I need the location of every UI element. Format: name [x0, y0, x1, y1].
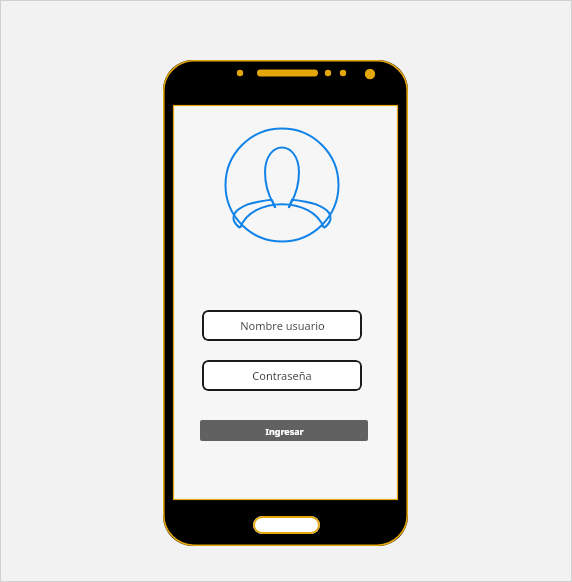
staticText: Contraseña	[252, 368, 312, 383]
staticText: Nombre usuario	[240, 318, 325, 333]
button[interactable]: Inicio	[253, 516, 320, 534]
button[interactable]: Nombre usuario	[202, 310, 362, 341]
button[interactable]: Foto de perfil	[224, 127, 340, 243]
button[interactable]: Contraseña	[202, 360, 362, 391]
button[interactable]: Ingresar	[200, 420, 368, 441]
staticText: Ingresar	[265, 425, 304, 437]
